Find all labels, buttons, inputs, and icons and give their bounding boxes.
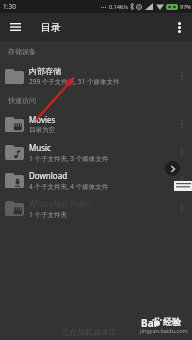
button[interactable]: More options	[170, 18, 188, 36]
button[interactable]: Movies	[0, 110, 192, 138]
staticText: 目录为空	[29, 126, 55, 134]
button[interactable]: Item menu	[175, 66, 189, 86]
button[interactable]: 内部存储	[0, 62, 192, 90]
staticText: 目录	[41, 21, 61, 34]
staticText: 正在加载媒体库…	[61, 326, 124, 337]
staticText: 快速访问	[8, 96, 36, 105]
staticText: WhatsApp Video	[29, 198, 91, 209]
staticText: 299 个子文件夹, 51 个媒体文件	[29, 77, 120, 86]
staticText: 1:30	[3, 2, 16, 11]
staticText: Movies	[29, 114, 56, 125]
staticText: 1 个子文件夹, 3 个媒体文件	[29, 154, 109, 163]
staticText: 存储设备	[8, 47, 36, 56]
staticText: Music	[29, 142, 51, 153]
button[interactable]: Item menu	[175, 114, 189, 134]
staticText: 0.14K/s	[109, 3, 128, 10]
staticText: 97%	[180, 3, 191, 10]
staticText: Download	[29, 170, 68, 181]
button[interactable]: Item menu	[175, 142, 189, 162]
staticText: 4 个子文件夹, 4 个媒体文件	[29, 182, 109, 191]
staticText: jingyan.baidu.com	[140, 327, 188, 334]
staticText: 1 个子文件夹	[29, 210, 67, 219]
button[interactable]: Item menu	[175, 170, 189, 190]
staticText: 内部存储	[29, 66, 61, 76]
button[interactable]: Menu	[6, 18, 24, 36]
button[interactable]: Next page	[165, 161, 180, 176]
button[interactable]: Download	[0, 166, 192, 194]
button[interactable]: Music	[0, 138, 192, 166]
staticText: 经验	[163, 316, 181, 327]
button[interactable]: WhatsApp Video	[0, 194, 192, 222]
button[interactable]: Item menu	[175, 198, 189, 218]
staticText: Bai	[141, 316, 157, 330]
